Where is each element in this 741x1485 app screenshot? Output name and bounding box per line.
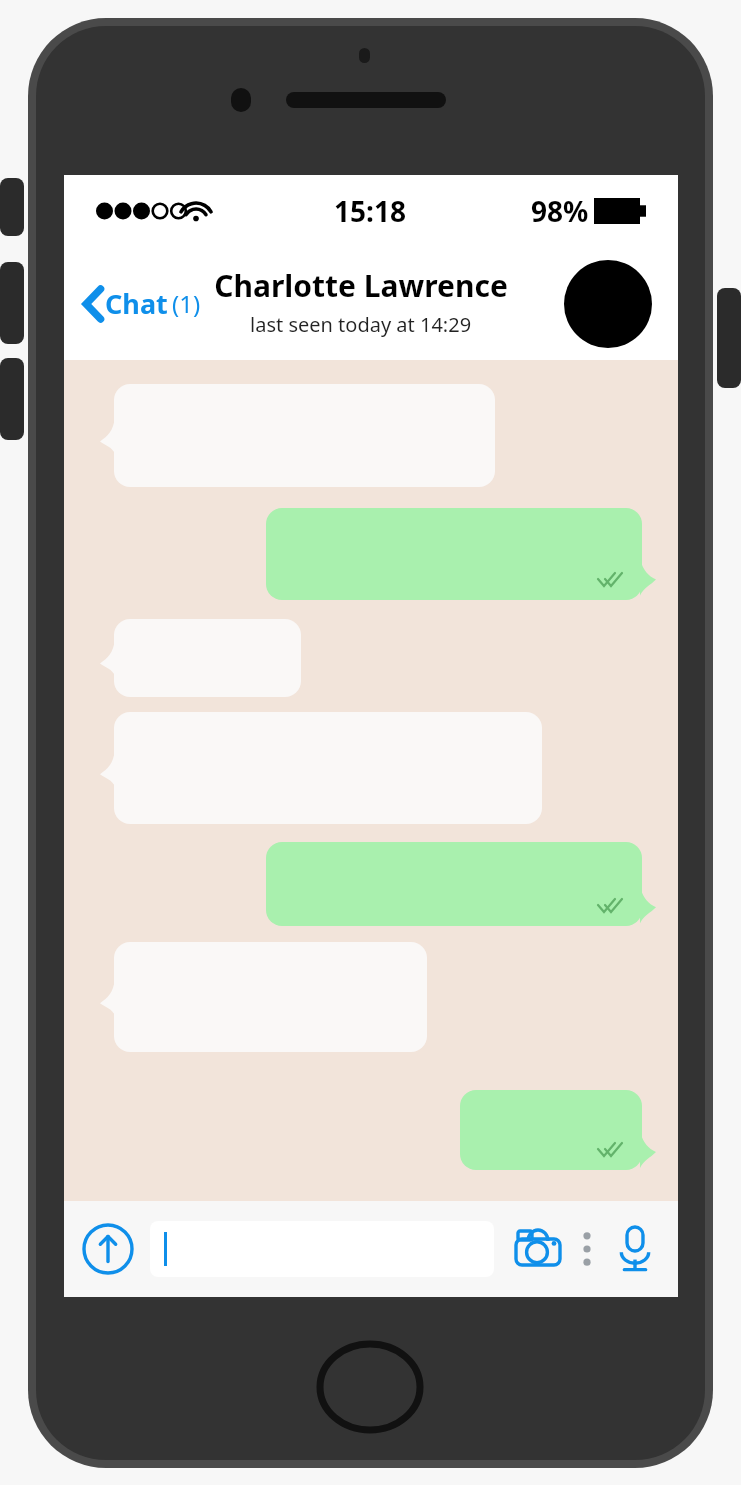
button[interactable] (100, 619, 301, 697)
staticText: 15:18 (334, 192, 406, 230)
button[interactable] (266, 842, 656, 926)
button[interactable]: Voice message (608, 1222, 662, 1276)
staticText: Chat (105, 285, 168, 322)
button[interactable]: More options (572, 1222, 602, 1276)
button[interactable] (460, 1090, 656, 1170)
button[interactable]: Contact avatar (564, 260, 652, 348)
button[interactable] (266, 508, 656, 600)
button[interactable]: Camera (512, 1222, 566, 1276)
staticText: Charlotte Lawrence (214, 265, 508, 306)
button[interactable] (150, 1221, 494, 1277)
button[interactable] (100, 942, 427, 1052)
staticText: last seen today at 14:29 (250, 311, 472, 338)
button[interactable] (100, 712, 542, 824)
button[interactable]: Send (80, 1221, 136, 1277)
staticText: (1) (172, 287, 201, 320)
button[interactable]: Chat (78, 277, 207, 330)
button[interactable] (100, 384, 495, 487)
staticText: 98% (531, 192, 589, 230)
